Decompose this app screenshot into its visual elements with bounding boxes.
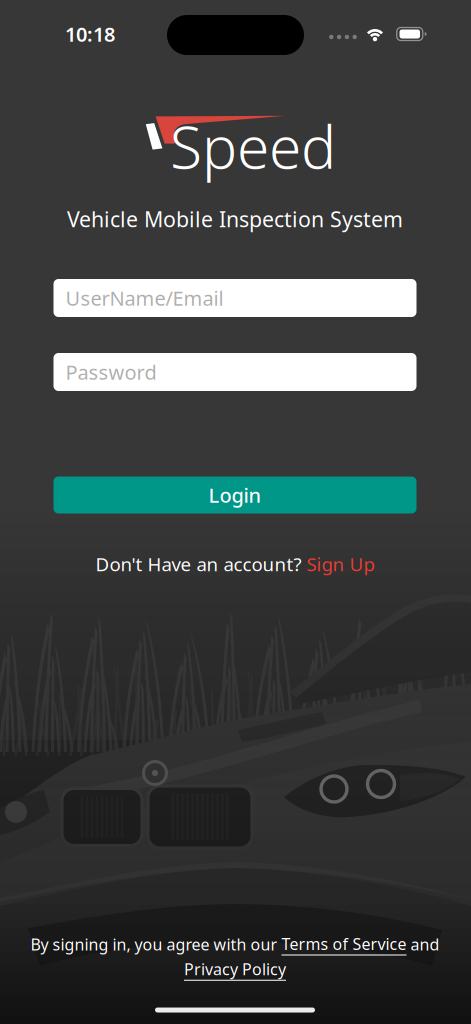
button[interactable]: Password — [53, 353, 416, 391]
button[interactable]: UserName/Email — [53, 279, 416, 317]
staticText: Speed — [170, 107, 336, 185]
staticText: Don't Have an account? — [95, 552, 306, 576]
button[interactable]: Login — [53, 476, 416, 513]
button[interactable]: Terms of Service — [281, 933, 406, 955]
staticText: Login — [208, 482, 261, 508]
button[interactable]: Privacy Policy — [184, 958, 286, 981]
staticText: UserName/Email — [65, 285, 223, 311]
staticText: Sign Up — [306, 552, 374, 576]
staticText: Vehicle Mobile Inspection System — [67, 205, 403, 233]
staticText: By signing in, you agree with our — [30, 934, 281, 955]
staticText: and — [406, 934, 439, 955]
staticText: Password — [65, 359, 156, 385]
button[interactable]: Sign Up — [306, 552, 374, 576]
staticText: 10:18 — [65, 21, 115, 47]
staticText: Privacy Policy — [184, 958, 286, 980]
staticText: Terms of Service — [281, 933, 406, 954]
